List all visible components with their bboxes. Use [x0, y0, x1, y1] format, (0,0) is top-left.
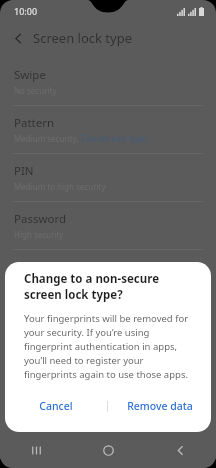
button[interactable]: Swipe [0, 58, 216, 105]
button[interactable]: Cancel [5, 393, 107, 419]
staticText: No security [14, 85, 57, 96]
staticText: Medium to high security [14, 181, 106, 192]
staticText: Remove data [127, 399, 193, 413]
button[interactable]: Home [72, 432, 144, 468]
staticText: Swipe [14, 67, 46, 83]
staticText: Password [14, 211, 67, 227]
staticText: None [14, 259, 44, 275]
button[interactable]: Back [144, 432, 216, 468]
button[interactable]: None [0, 250, 216, 284]
staticText: Pattern [14, 115, 55, 131]
staticText: Screen lock type [33, 29, 132, 47]
staticText: Medium security, [14, 133, 81, 144]
staticText: Current lock type [81, 133, 146, 144]
staticText: High security [14, 229, 64, 240]
staticText: Your fingerprints will be removed for yo… [24, 312, 197, 381]
button[interactable]: Password [0, 202, 216, 249]
staticText: Change to a non-secure screen lock type? [24, 271, 195, 302]
button[interactable]: Recents [0, 432, 72, 468]
staticText: Cancel [39, 399, 73, 413]
staticText: 10:00 [14, 5, 38, 17]
staticText: PIN [14, 163, 34, 179]
button[interactable]: Pattern [0, 106, 216, 153]
button[interactable]: Remove data [108, 393, 211, 419]
button[interactable]: Back [7, 27, 29, 49]
